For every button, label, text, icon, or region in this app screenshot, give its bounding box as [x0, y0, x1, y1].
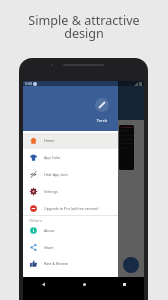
staticText: Home [44, 138, 55, 143]
button[interactable]: App Color [23, 149, 118, 166]
button[interactable]: Hide App Icon [23, 166, 118, 183]
staticText: Simple & attractive design [28, 12, 140, 42]
staticText: Others [29, 218, 42, 223]
staticText: Rate & Review [44, 261, 68, 266]
staticText: Share [44, 245, 54, 250]
staticText: Hide App Icon [44, 172, 68, 177]
button[interactable]: Rate & Review [23, 255, 118, 272]
staticText: About [44, 228, 55, 233]
staticText: App Color [44, 155, 61, 160]
button[interactable]: About [23, 222, 118, 239]
button[interactable]: Add [123, 257, 139, 273]
staticText: 5:50 [25, 81, 32, 86]
button[interactable]: Share [23, 239, 118, 256]
button[interactable]: Upgrade to Pro (ad-free version) [23, 200, 118, 217]
staticText: Settings [44, 189, 58, 194]
button[interactable]: Settings [23, 183, 118, 200]
button[interactable]: Home [23, 132, 118, 149]
staticText: Torch [91, 118, 113, 123]
staticText: Upgrade to Pro (ad-free version) [44, 206, 99, 211]
